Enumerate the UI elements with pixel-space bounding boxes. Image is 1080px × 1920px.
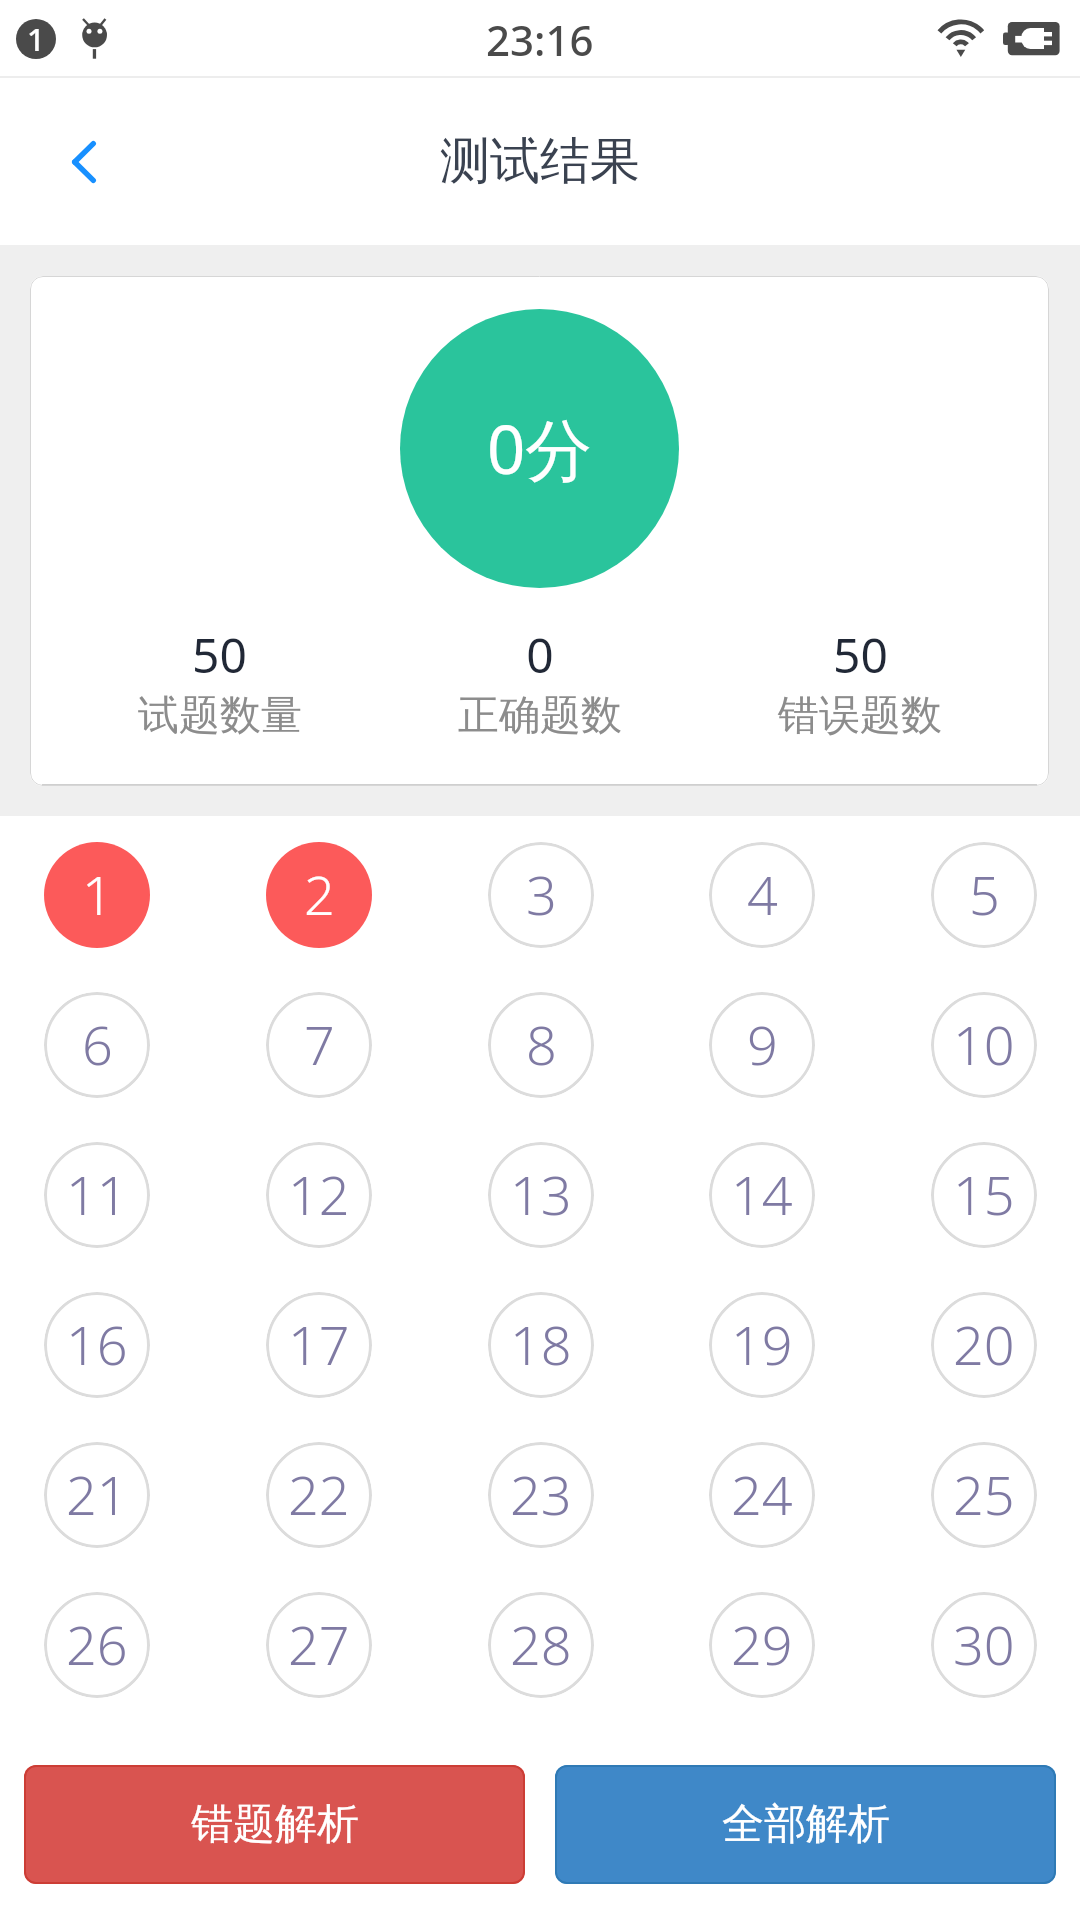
staticText: 19: [731, 1307, 793, 1381]
staticText: 正确题数: [458, 690, 622, 742]
button[interactable]: 13: [488, 1142, 594, 1248]
button[interactable]: 5: [931, 842, 1037, 948]
button[interactable]: 10: [931, 992, 1037, 1098]
staticText: 0: [526, 622, 554, 687]
button[interactable]: 8: [488, 992, 594, 1098]
button[interactable]: 19: [709, 1292, 815, 1398]
staticText: 8: [526, 1007, 557, 1081]
button[interactable]: 23: [488, 1442, 594, 1548]
button[interactable]: 18: [488, 1292, 594, 1398]
button[interactable]: 6: [44, 992, 150, 1098]
button[interactable]: 16: [44, 1292, 150, 1398]
button[interactable]: 全部解析: [555, 1765, 1056, 1884]
staticText: 22: [288, 1457, 350, 1531]
button[interactable]: 28: [488, 1592, 594, 1698]
staticText: 5: [969, 857, 1000, 931]
staticText: 14: [731, 1157, 793, 1231]
button[interactable]: 24: [709, 1442, 815, 1548]
staticText: 0分: [487, 402, 593, 494]
staticText: 7: [304, 1007, 335, 1081]
staticText: 9: [747, 1007, 778, 1081]
button[interactable]: 27: [266, 1592, 372, 1698]
staticText: 28: [510, 1607, 572, 1681]
staticText: 50: [192, 622, 247, 687]
button[interactable]: 4: [709, 842, 815, 948]
button[interactable]: 20: [931, 1292, 1037, 1398]
staticText: 16: [66, 1307, 128, 1381]
staticText: 23: [510, 1457, 572, 1531]
staticText: 全部解析: [722, 1798, 890, 1851]
staticText: 13: [510, 1157, 572, 1231]
button[interactable]: 17: [266, 1292, 372, 1398]
staticText: 30: [953, 1607, 1015, 1681]
staticText: 20: [953, 1307, 1015, 1381]
button[interactable]: 11: [44, 1142, 150, 1248]
staticText: 24: [731, 1457, 793, 1531]
button[interactable]: 9: [709, 992, 815, 1098]
button[interactable]: 错题解析: [24, 1765, 525, 1884]
button[interactable]: 12: [266, 1142, 372, 1248]
staticText: 3: [526, 857, 557, 931]
staticText: 27: [288, 1607, 350, 1681]
staticText: 15: [953, 1157, 1015, 1231]
button[interactable]: 7: [266, 992, 372, 1098]
staticText: 错误题数: [778, 690, 942, 742]
staticText: 21: [66, 1457, 128, 1531]
staticText: 26: [66, 1607, 128, 1681]
button[interactable]: Back: [34, 112, 134, 212]
button[interactable]: 14: [709, 1142, 815, 1248]
button[interactable]: 2: [266, 842, 372, 948]
staticText: 23:16: [486, 11, 594, 68]
staticText: 18: [510, 1307, 572, 1381]
staticText: 10: [953, 1007, 1015, 1081]
staticText: 29: [731, 1607, 793, 1681]
staticText: 11: [66, 1157, 128, 1231]
button[interactable]: 26: [44, 1592, 150, 1698]
staticText: 6: [82, 1007, 113, 1081]
button[interactable]: 22: [266, 1442, 372, 1548]
staticText: 测试结果: [440, 130, 640, 193]
staticText: 25: [953, 1457, 1015, 1531]
staticText: 试题数量: [138, 690, 302, 742]
staticText: 17: [288, 1307, 350, 1381]
staticText: 2: [304, 857, 335, 931]
button[interactable]: 30: [931, 1592, 1037, 1698]
button[interactable]: 29: [709, 1592, 815, 1698]
button[interactable]: 1: [44, 842, 150, 948]
staticText: 1: [82, 857, 113, 931]
button[interactable]: 25: [931, 1442, 1037, 1548]
staticText: 错题解析: [191, 1798, 359, 1851]
button[interactable]: 21: [44, 1442, 150, 1548]
staticText: 12: [288, 1157, 350, 1231]
staticText: 4: [747, 857, 778, 931]
staticText: 50: [833, 622, 888, 687]
button[interactable]: 3: [488, 842, 594, 948]
button[interactable]: 15: [931, 1142, 1037, 1248]
staticText: 1: [27, 19, 45, 58]
